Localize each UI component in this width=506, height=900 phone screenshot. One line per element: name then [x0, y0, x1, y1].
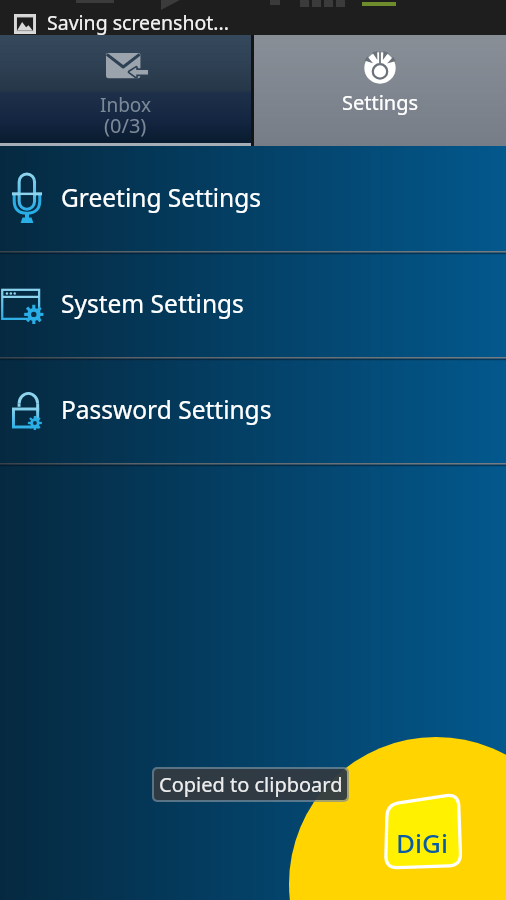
staticText: Password Settings	[61, 393, 272, 426]
staticText: Copied to clipboard	[159, 771, 343, 798]
button[interactable]: Greeting Settings	[0, 146, 506, 252]
staticText: (0/3)	[104, 112, 147, 139]
button[interactable]: System Settings	[0, 252, 506, 358]
staticText: Greeting Settings	[61, 181, 262, 214]
button[interactable]: Settings	[254, 35, 506, 146]
button[interactable]: Inbox	[0, 35, 251, 146]
staticText: DiGi	[396, 825, 448, 860]
button[interactable]: Password Settings	[0, 358, 506, 464]
staticText: System Settings	[61, 287, 244, 320]
button[interactable]: DiGi logo	[382, 792, 462, 872]
staticText: Settings	[342, 89, 419, 116]
staticText: Saving screenshot...	[47, 9, 230, 36]
staticText: Inbox	[100, 92, 152, 118]
